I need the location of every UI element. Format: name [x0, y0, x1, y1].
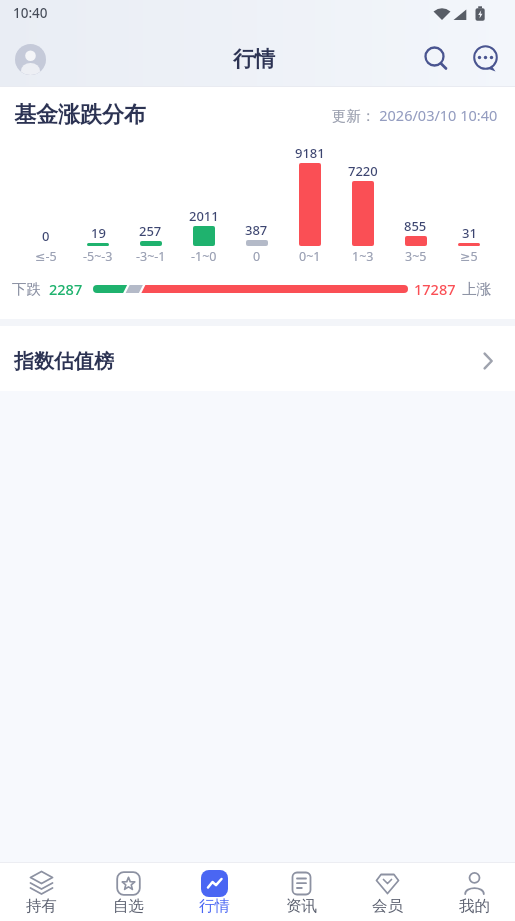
button[interactable]: 行情 [189, 863, 239, 921]
staticText: 257 [139, 222, 162, 240]
staticText: 2287 [49, 279, 83, 299]
staticText: 0 [42, 227, 50, 245]
button[interactable]: 持有 [16, 863, 66, 921]
staticText: 基金涨跌分布 [14, 101, 146, 129]
staticText: 10:40 [13, 4, 48, 22]
button[interactable] [421, 44, 451, 74]
staticText: 31 [462, 224, 477, 242]
staticText: 9181 [295, 144, 325, 162]
staticText: 行情 [233, 46, 275, 72]
staticText: -5~-3 [83, 248, 113, 265]
staticText: 自选 [113, 896, 144, 916]
button[interactable] [15, 44, 46, 75]
button[interactable]: 资讯 [276, 863, 326, 921]
staticText: 3~5 [405, 248, 427, 265]
button[interactable]: 会员 [362, 863, 412, 921]
staticText: 0 [253, 248, 261, 265]
staticText: 387 [245, 221, 268, 239]
staticText: 下跌 [12, 280, 41, 298]
staticText: 上涨 [462, 280, 491, 298]
staticText: 更新： 2026/03/10 10:40 [332, 105, 498, 125]
staticText: 7220 [348, 162, 378, 180]
staticText: 0~1 [299, 248, 321, 265]
staticText: 17287 [414, 279, 456, 299]
staticText: 资讯 [286, 896, 317, 916]
staticText: 我的 [459, 896, 490, 916]
staticText: 指数估值榜 [14, 349, 114, 374]
button[interactable] [471, 44, 501, 74]
staticText: -3~-1 [136, 248, 166, 265]
staticText: 2011 [189, 207, 219, 225]
staticText: 19 [91, 224, 106, 242]
button[interactable]: 自选 [103, 863, 153, 921]
button[interactable]: 指数估值榜 [0, 326, 515, 391]
staticText: ≤-5 [35, 248, 57, 265]
staticText: ≥5 [460, 248, 478, 265]
staticText: 会员 [372, 896, 403, 916]
staticText: 1~3 [352, 248, 374, 265]
staticText: 持有 [26, 896, 57, 916]
staticText: 855 [404, 217, 427, 235]
staticText: -1~0 [191, 248, 217, 265]
button[interactable]: 我的 [449, 863, 499, 921]
staticText: 行情 [199, 896, 230, 916]
